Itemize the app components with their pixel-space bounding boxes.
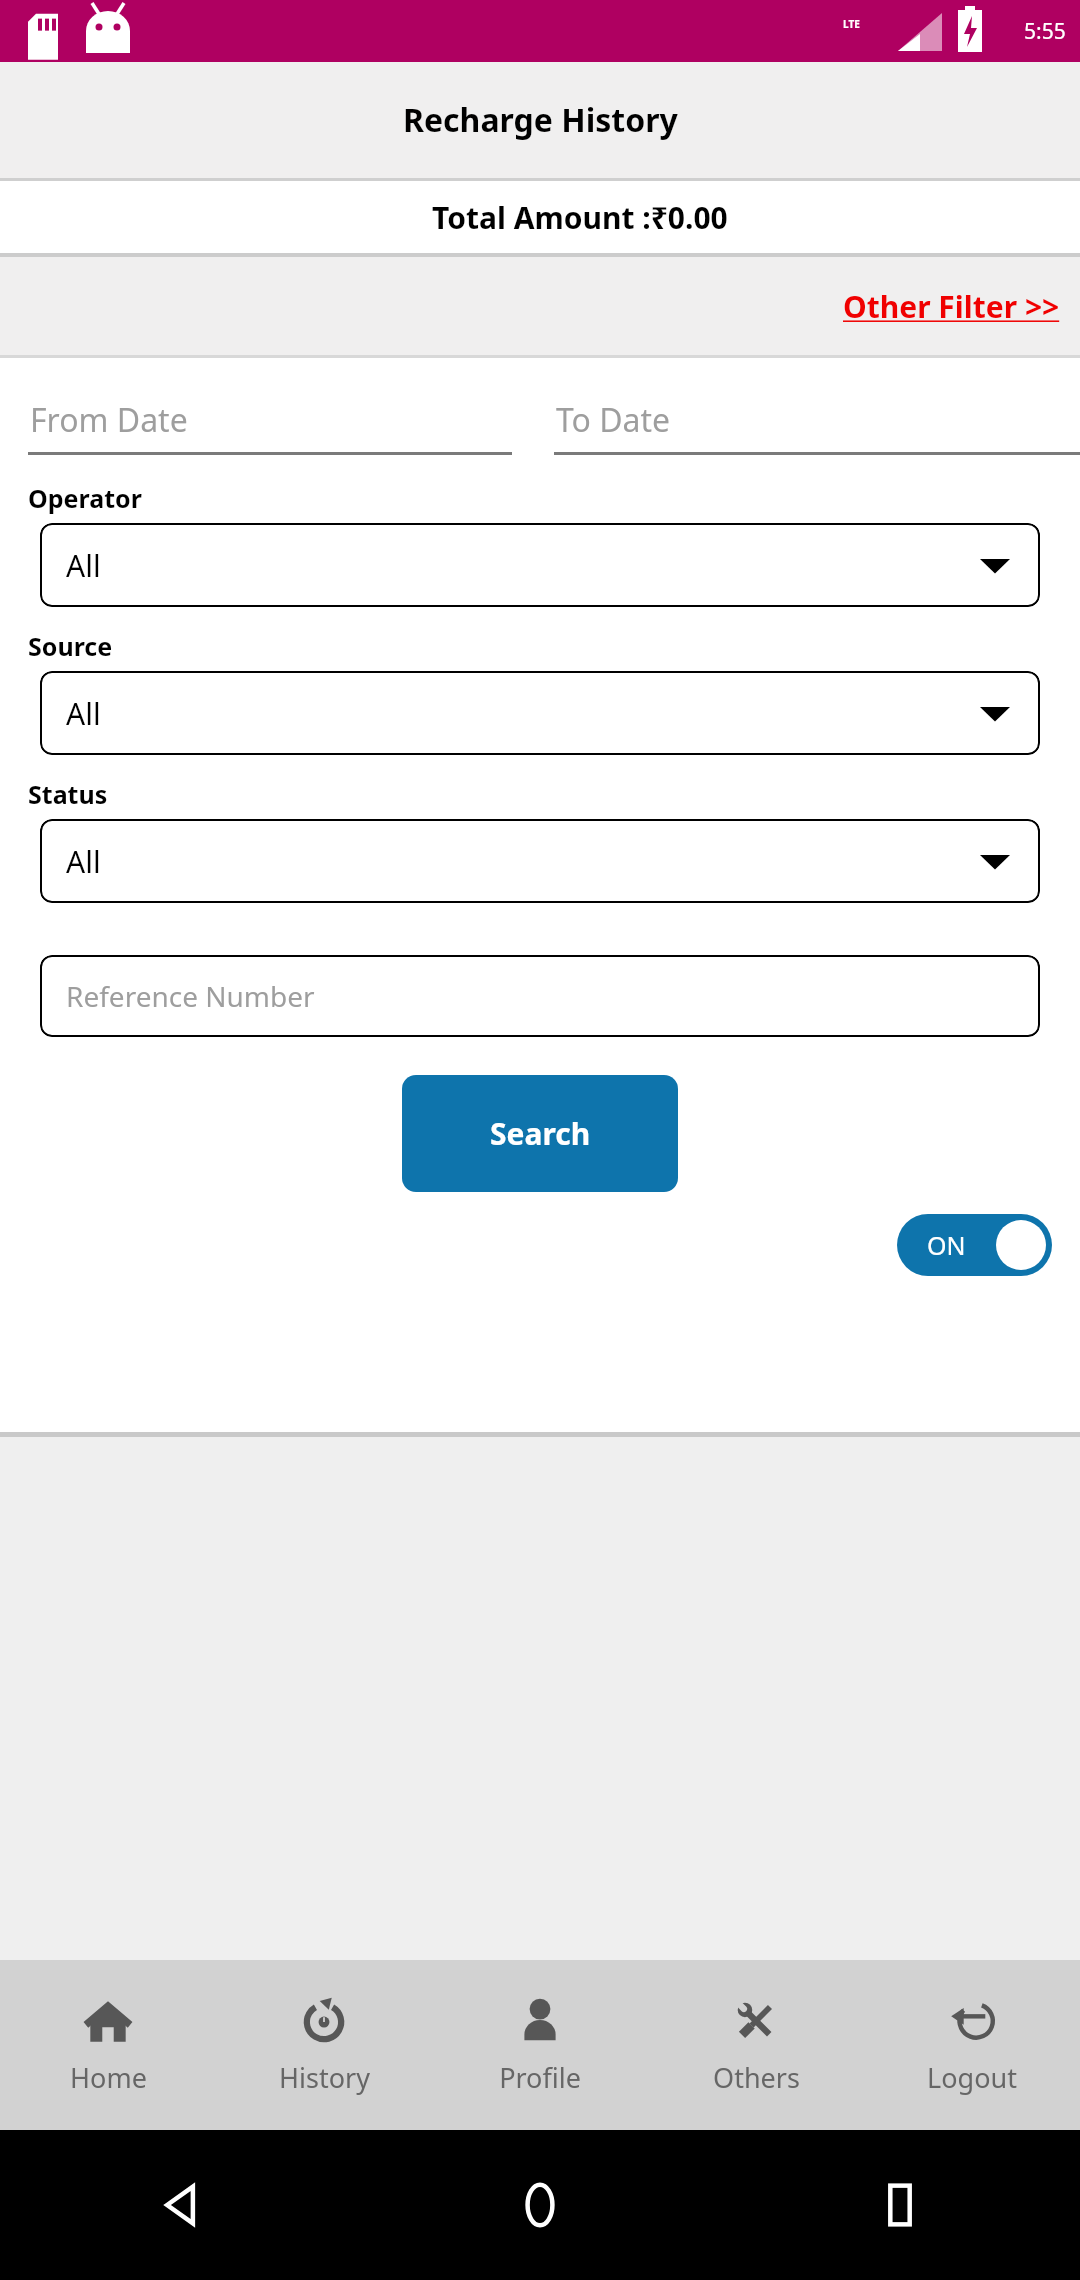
button[interactable]: Back — [0, 2130, 360, 2280]
staticText: Home — [70, 2059, 147, 2096]
button[interactable]: Home — [0, 1960, 216, 2130]
button[interactable]: From Date — [28, 398, 512, 455]
staticText: Logout — [927, 2059, 1017, 2096]
staticText: All — [66, 693, 101, 734]
button[interactable]: Search — [402, 1075, 678, 1192]
staticText: All — [66, 545, 101, 586]
button[interactable]: Others — [648, 1960, 864, 2130]
button[interactable]: To Date — [554, 398, 1080, 455]
button[interactable]: Home — [360, 2130, 720, 2280]
staticText: Recharge History — [403, 98, 678, 142]
staticText: All — [66, 841, 101, 882]
button[interactable]: History — [216, 1960, 432, 2130]
button[interactable]: All — [40, 819, 1040, 903]
button[interactable]: All — [40, 671, 1040, 755]
button[interactable]: Toggle On — [897, 1214, 1052, 1276]
button[interactable]: Other Filter >> — [837, 280, 1066, 333]
staticText: 5:55 — [1024, 17, 1066, 46]
button[interactable]: Reference Number — [40, 955, 1040, 1037]
staticText: From Date — [30, 398, 188, 442]
button[interactable]: Recent apps — [720, 2130, 1080, 2280]
staticText: Total Amount :₹0.00 — [432, 197, 728, 238]
button[interactable]: All — [40, 523, 1040, 607]
staticText: Operator — [28, 481, 142, 515]
staticText: Reference Number — [66, 977, 315, 1015]
staticText: History — [279, 2059, 370, 2096]
staticText: Status — [28, 777, 108, 811]
staticText: Other Filter >> — [843, 286, 1060, 327]
staticText: Profile — [499, 2059, 581, 2096]
staticText: Source — [28, 629, 113, 663]
staticText: ON — [927, 1228, 966, 1262]
button[interactable]: Profile — [432, 1960, 648, 2130]
button[interactable]: Logout — [864, 1960, 1080, 2130]
staticText: LTE — [843, 17, 860, 31]
staticText: Search — [490, 1113, 591, 1154]
staticText: Others — [713, 2059, 800, 2096]
staticText: To Date — [556, 398, 671, 442]
